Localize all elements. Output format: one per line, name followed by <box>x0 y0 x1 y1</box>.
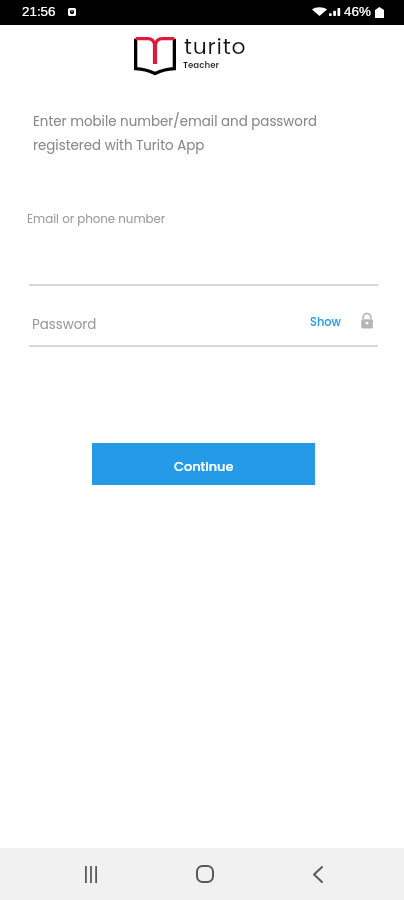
staticText: Show <box>310 314 341 330</box>
staticText: Teacher <box>183 59 220 71</box>
staticText: turito <box>184 31 247 62</box>
staticText: Password <box>32 315 97 334</box>
button[interactable]: Home <box>171 848 239 900</box>
button[interactable]: Show <box>310 314 341 330</box>
other: Toggle password visibility <box>360 312 374 329</box>
staticText: registered with Turito App <box>33 136 205 155</box>
staticText: 21:56 <box>22 4 56 19</box>
button[interactable]: Continue <box>92 443 315 485</box>
button[interactable]: Recent apps <box>57 848 125 900</box>
staticText: 46% <box>344 4 371 19</box>
staticText: Enter mobile number/email and password <box>33 112 317 131</box>
staticText: Email or phone number <box>27 211 166 228</box>
staticText: Continue <box>174 457 234 475</box>
button[interactable]: Back <box>284 848 352 900</box>
